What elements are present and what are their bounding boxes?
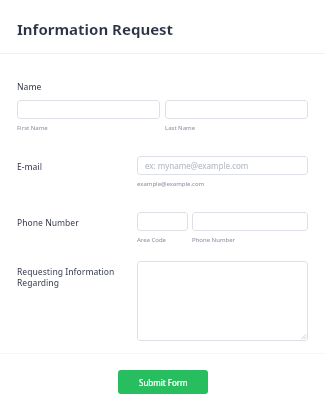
staticText: Information Request [17,19,174,39]
button[interactable]: Submit Form [118,370,208,394]
staticText: Phone Number [192,236,236,244]
button[interactable]: Last Name [165,100,308,119]
button[interactable]: Phone Number [192,212,308,231]
staticText: Requesting Information Regarding [17,266,115,288]
button[interactable]: Requesting Information Regarding [137,261,308,341]
staticText: Area Code [137,236,166,244]
staticText: example@example.com [137,180,205,188]
staticText: E-mail [17,161,42,173]
button[interactable]: E-mail [137,156,308,175]
staticText: Name [17,81,42,93]
staticText: Last Name [165,124,196,132]
staticText: Phone Number [17,217,79,229]
staticText: ex: myname@example.com [145,160,249,171]
button[interactable]: Area Code [137,212,188,231]
button[interactable]: First Name [17,100,160,119]
staticText: First Name [17,124,48,132]
staticText: Submit Form [139,377,188,388]
